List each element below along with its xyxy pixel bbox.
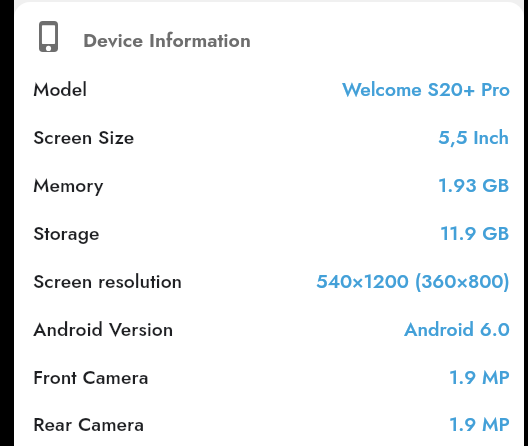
button[interactable]: Rear Camera	[14, 401, 524, 446]
staticText: 11.9 GB	[440, 219, 510, 247]
button[interactable]: Memory	[14, 161, 524, 209]
staticText: Screen resolution	[33, 267, 183, 295]
staticText: Rear Camera	[33, 410, 145, 438]
button[interactable]: Model	[14, 65, 524, 113]
staticText: Model	[33, 75, 88, 103]
button[interactable]: Android Version	[14, 305, 524, 353]
staticText: Storage	[33, 219, 100, 247]
staticText: Screen Size	[33, 123, 135, 151]
staticText: 1.9 MP	[449, 410, 510, 438]
staticText: 5,5 Inch	[438, 123, 510, 151]
button[interactable]: Storage	[14, 209, 524, 257]
staticText: Memory	[33, 171, 104, 199]
staticText: Android Version	[33, 315, 174, 343]
staticText: 1.93 GB	[438, 171, 510, 199]
button[interactable]: Front Camera	[14, 353, 524, 401]
other: Device	[39, 21, 58, 52]
staticText: Front Camera	[33, 363, 149, 391]
button[interactable]: Screen resolution	[14, 257, 524, 305]
button[interactable]: Screen Size	[14, 113, 524, 161]
button[interactable]: Device	[14, 2, 524, 65]
staticText: 540×1200 (360×800)	[316, 267, 510, 295]
staticText: Welcome S20+ Pro	[342, 75, 510, 103]
staticText: Android 6.0	[404, 315, 510, 343]
staticText: 1.9 MP	[449, 363, 510, 391]
staticText: Device Information	[83, 26, 251, 54]
